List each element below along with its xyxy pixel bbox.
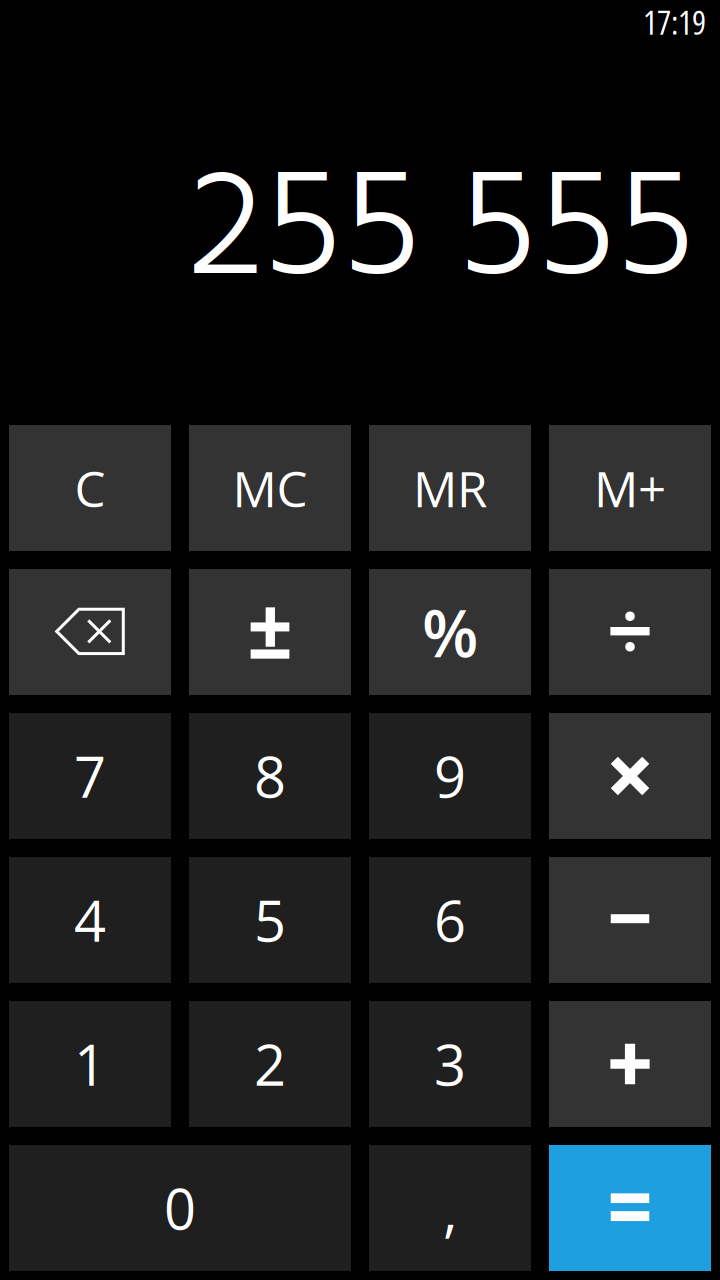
button[interactable]: MC: [189, 425, 351, 551]
button[interactable]: 7: [9, 713, 171, 839]
button[interactable]: Divide: [549, 569, 711, 695]
button[interactable]: Minus: [549, 857, 711, 983]
button[interactable]: 9: [369, 713, 531, 839]
staticText: ,: [443, 1172, 457, 1248]
staticText: 4: [74, 882, 106, 958]
button[interactable]: 1: [9, 1001, 171, 1127]
staticText: 6: [434, 882, 466, 958]
staticText: 8: [254, 738, 286, 814]
button[interactable]: M+: [549, 425, 711, 551]
button[interactable]: %: [369, 569, 531, 695]
staticText: 3: [434, 1026, 466, 1102]
staticText: C: [74, 454, 105, 522]
button[interactable]: C: [9, 425, 171, 551]
staticText: 9: [434, 738, 466, 814]
button[interactable]: 2: [189, 1001, 351, 1127]
button[interactable]: 4: [9, 857, 171, 983]
staticText: 17:19: [643, 0, 706, 44]
button[interactable]: Backspace: [9, 569, 171, 695]
staticText: %: [422, 587, 478, 676]
staticText: 5: [254, 882, 286, 958]
staticText: 2: [254, 1026, 286, 1102]
button[interactable]: 3: [369, 1001, 531, 1127]
button[interactable]: Equals: [549, 1145, 711, 1271]
button[interactable]: Multiply: [549, 713, 711, 839]
staticText: 0: [164, 1170, 196, 1246]
staticText: 255 555: [188, 111, 695, 357]
staticText: M+: [594, 454, 666, 522]
button[interactable]: Plus or minus: [189, 569, 351, 695]
button[interactable]: 5: [189, 857, 351, 983]
button[interactable]: Plus: [549, 1001, 711, 1127]
staticText: MC: [232, 454, 307, 522]
button[interactable]: 8: [189, 713, 351, 839]
button[interactable]: 6: [369, 857, 531, 983]
staticText: 7: [74, 738, 106, 814]
button[interactable]: 0: [9, 1145, 351, 1271]
button[interactable]: ,: [369, 1145, 531, 1271]
staticText: 1: [74, 1026, 106, 1102]
button[interactable]: MR: [369, 425, 531, 551]
staticText: MR: [413, 454, 487, 522]
